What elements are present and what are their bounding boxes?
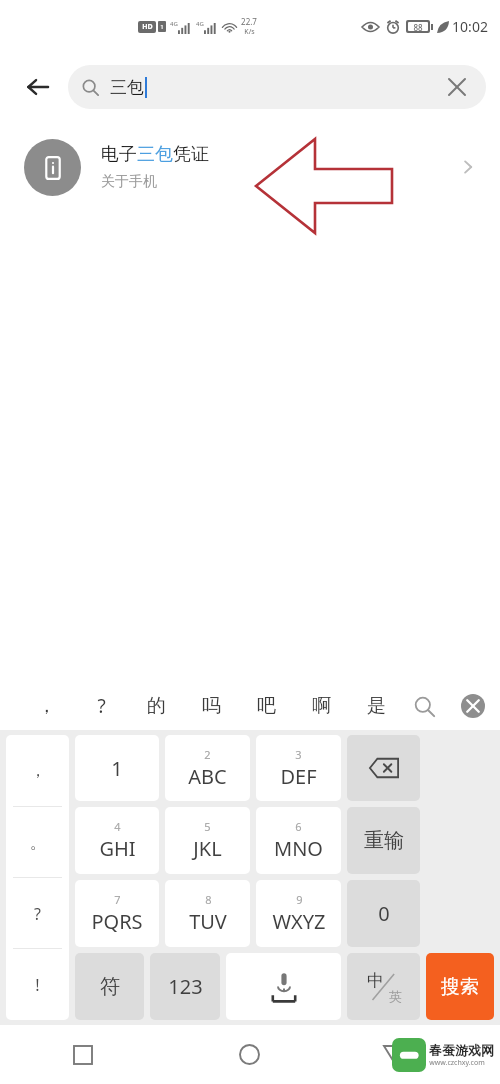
staticText: 。 xyxy=(30,833,46,853)
button[interactable]: 7 xyxy=(75,880,159,947)
staticText: 4 xyxy=(114,819,121,834)
button[interactable]: ! xyxy=(6,949,69,1020)
staticText: 123 xyxy=(168,973,203,1000)
staticText: TUV xyxy=(189,908,227,935)
button[interactable]: 是 xyxy=(349,682,404,730)
button[interactable]: 。 xyxy=(6,807,69,878)
button[interactable]: Close keyboard xyxy=(456,689,490,723)
button[interactable]: Back xyxy=(14,63,62,111)
button[interactable]: Switch language xyxy=(347,953,420,1020)
staticText: 吗 xyxy=(202,694,221,718)
staticText: 4G xyxy=(170,20,178,28)
staticText: WXYZ xyxy=(272,908,326,935)
button[interactable]: 电子三包凭证 xyxy=(0,122,500,212)
staticText: 英 xyxy=(389,988,402,1004)
button[interactable]: 1 xyxy=(75,735,159,801)
staticText: 搜索 xyxy=(441,975,479,999)
button[interactable]: 5 xyxy=(165,807,250,874)
staticText: 重输 xyxy=(364,828,404,853)
button[interactable]: Delete xyxy=(347,735,420,801)
staticText: PQRS xyxy=(91,908,143,935)
button[interactable]: 符 xyxy=(75,953,144,1020)
button[interactable]: ， xyxy=(18,682,74,730)
staticText: 9 xyxy=(296,892,303,907)
staticText: 中 xyxy=(367,970,384,991)
button[interactable]: Search candidates xyxy=(404,686,444,726)
staticText: 啊 xyxy=(312,694,331,718)
staticText: 吧 xyxy=(257,694,276,718)
staticText: ! xyxy=(35,974,40,996)
button[interactable]: 啊 xyxy=(294,682,349,730)
button[interactable]: 6 xyxy=(256,807,341,874)
button[interactable]: 4 xyxy=(75,807,159,874)
staticText: 88 xyxy=(413,22,423,31)
button[interactable]: 三包 xyxy=(68,65,486,109)
button[interactable]: ? xyxy=(6,878,69,949)
staticText: ， xyxy=(30,761,46,781)
staticText: JKL xyxy=(193,835,222,862)
staticText: GHI xyxy=(99,835,136,862)
button[interactable]: Back xyxy=(333,1025,500,1084)
button[interactable]: Space xyxy=(226,953,341,1020)
staticText: ? xyxy=(34,903,41,925)
staticText: 3 xyxy=(295,747,302,762)
button[interactable]: 吧 xyxy=(239,682,294,730)
staticText: 1 xyxy=(111,755,123,782)
staticText: 三包 xyxy=(110,77,144,98)
staticText: 22.7 xyxy=(241,16,257,27)
button[interactable]: ? xyxy=(74,682,129,730)
button[interactable]: 3 xyxy=(256,735,341,801)
staticText: 10:02 xyxy=(452,17,488,36)
staticText: 2 xyxy=(204,747,211,762)
staticText: 的 xyxy=(147,694,166,718)
button[interactable]: 的 xyxy=(129,682,184,730)
staticText: 8 xyxy=(205,892,212,907)
button[interactable]: 吗 xyxy=(184,682,239,730)
staticText: 6 xyxy=(295,819,302,834)
button[interactable]: 重输 xyxy=(347,807,420,874)
staticText: 电子三包凭证 xyxy=(101,143,209,166)
staticText: 符 xyxy=(100,974,120,999)
staticText: ， xyxy=(37,694,56,718)
button[interactable]: 0 xyxy=(347,880,420,947)
staticText: 5 xyxy=(204,819,211,834)
staticText: 春蚕游戏网 xyxy=(429,1042,494,1058)
button[interactable]: Home xyxy=(166,1025,333,1084)
staticText: 7 xyxy=(114,892,121,907)
staticText: 是 xyxy=(367,694,386,718)
button[interactable]: 8 xyxy=(165,880,250,947)
staticText: DEF xyxy=(280,763,317,790)
button[interactable]: Clear xyxy=(442,72,472,102)
button[interactable]: 2 xyxy=(165,735,250,801)
staticText: 1 xyxy=(160,23,164,31)
staticText: www.czchxy.com xyxy=(429,1058,485,1068)
button[interactable]: Recents xyxy=(0,1025,166,1084)
staticText: 关于手机 xyxy=(101,173,157,191)
staticText: ABC xyxy=(188,763,227,790)
button[interactable]: 123 xyxy=(150,953,220,1020)
staticText: ? xyxy=(97,693,106,719)
staticText: 4G xyxy=(196,20,204,28)
button[interactable]: 搜索 xyxy=(426,953,494,1020)
staticText: 0 xyxy=(378,900,390,927)
button[interactable]: ， xyxy=(6,735,69,807)
staticText: HD xyxy=(142,22,153,32)
staticText: K/s xyxy=(244,27,255,37)
button[interactable]: 9 xyxy=(256,880,341,947)
staticText: MNO xyxy=(274,835,323,862)
